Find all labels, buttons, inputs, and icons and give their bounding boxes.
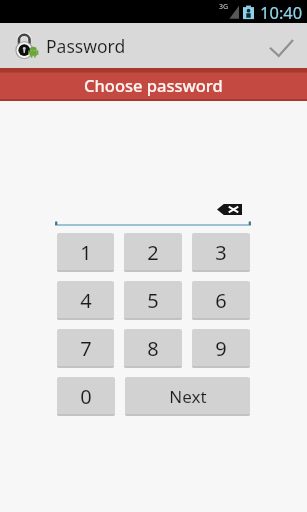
button[interactable]: 0	[57, 377, 115, 416]
staticText: 5	[147, 287, 159, 314]
staticText: 4	[80, 287, 92, 314]
button[interactable]: Next	[125, 377, 250, 416]
staticText: 3G	[219, 2, 229, 12]
button[interactable]: 1	[57, 233, 114, 272]
staticText: 8	[147, 335, 159, 362]
button[interactable]: 4	[57, 281, 114, 320]
staticText: 0	[80, 383, 92, 410]
staticText: 9	[215, 335, 227, 362]
staticText: Next	[169, 385, 207, 408]
button[interactable]: Done	[255, 23, 307, 68]
staticText: 7	[80, 335, 92, 362]
button[interactable]: Backspace	[215, 202, 243, 217]
button[interactable]: Password	[0, 23, 136, 68]
button[interactable]: 2	[124, 233, 182, 272]
button[interactable]: 8	[124, 329, 182, 368]
button[interactable]: 3	[192, 233, 250, 272]
staticText: 3	[215, 239, 227, 266]
staticText: 2	[147, 239, 159, 266]
staticText: 1	[80, 239, 92, 266]
button[interactable]: 5	[124, 281, 182, 320]
staticText: Password	[46, 34, 126, 58]
staticText: 6	[215, 287, 227, 314]
staticText: 10:40	[260, 1, 303, 23]
button[interactable]: 9	[192, 329, 250, 368]
staticText: Choose password	[84, 74, 223, 96]
button[interactable]: 6	[192, 281, 250, 320]
button[interactable]: 7	[57, 329, 114, 368]
